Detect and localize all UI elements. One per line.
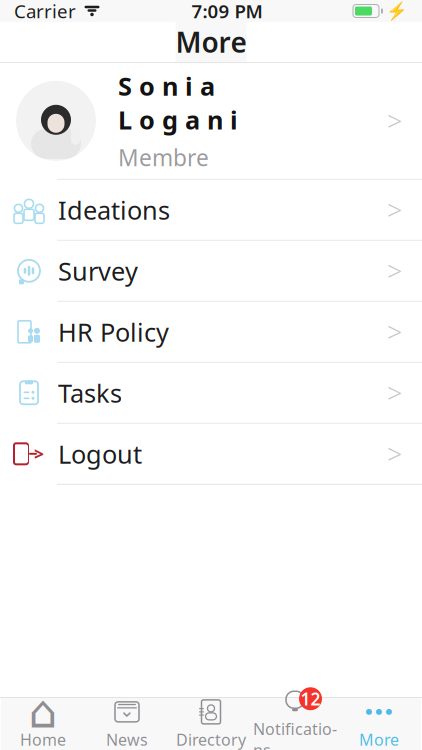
staticText: ⌂ — [28, 686, 57, 738]
staticText: > — [387, 436, 402, 471]
button[interactable]: S o n i a L o g a n i — [0, 63, 422, 179]
staticText: More — [359, 729, 399, 750]
button[interactable]: More — [337, 698, 421, 750]
staticText: S o n i a L o g a n i — [118, 69, 238, 136]
staticText: Tasks — [58, 376, 122, 410]
staticText: > — [387, 103, 402, 138]
button[interactable]: ⌂ — [1, 698, 85, 750]
staticText: 12 — [300, 687, 320, 710]
staticText: More — [175, 23, 246, 61]
button[interactable]: Ideations — [0, 180, 422, 240]
staticText: > — [387, 314, 402, 349]
staticText: Logout — [58, 437, 142, 471]
staticText: Survey — [58, 254, 138, 288]
staticText: ⚡ — [386, 1, 408, 21]
button[interactable]: HR Policy — [0, 302, 422, 362]
staticText: HR Policy — [58, 315, 169, 349]
staticText: > — [387, 253, 402, 288]
staticText: Carrier — [14, 0, 76, 23]
staticText: Notifications — [253, 718, 337, 750]
staticText: > — [34, 442, 44, 465]
staticText: 7:09 PM — [191, 0, 262, 23]
staticText: Membre — [118, 142, 209, 172]
staticText: Directory — [176, 729, 246, 750]
button[interactable]: ⌄ — [85, 698, 169, 750]
staticText: > — [387, 375, 402, 410]
staticText: > — [387, 192, 402, 227]
staticText: ⌄ — [119, 700, 135, 721]
button[interactable]: Directory — [169, 698, 253, 750]
button[interactable]: > — [0, 424, 422, 484]
button[interactable]: 🔔 — [253, 698, 337, 750]
staticText: Ideations — [58, 193, 170, 227]
staticText: Home — [20, 729, 66, 750]
staticText: News — [106, 729, 148, 750]
button[interactable]: Survey — [0, 241, 422, 301]
button[interactable]: Tasks — [0, 363, 422, 423]
